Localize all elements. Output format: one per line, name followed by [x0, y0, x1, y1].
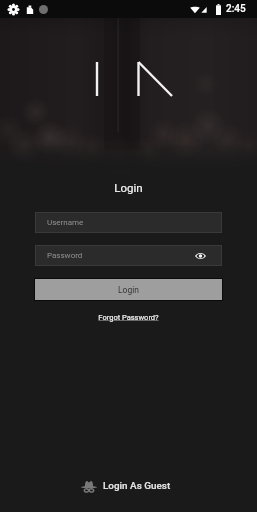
button[interactable]: Login: [35, 279, 222, 300]
button[interactable]: Password: [35, 245, 222, 266]
button[interactable]: Login As Guest: [74, 475, 177, 496]
button[interactable]: Username: [35, 212, 222, 233]
staticText: Password: [47, 251, 83, 260]
staticText: Login: [0, 181, 257, 194]
staticText: Username: [47, 218, 84, 227]
other: Show password: [195, 252, 206, 260]
staticText: Login: [118, 285, 139, 295]
staticText: Login As Guest: [103, 480, 171, 492]
button[interactable]: Forgot Password?: [0, 313, 257, 322]
staticText: 2:45: [226, 3, 246, 15]
